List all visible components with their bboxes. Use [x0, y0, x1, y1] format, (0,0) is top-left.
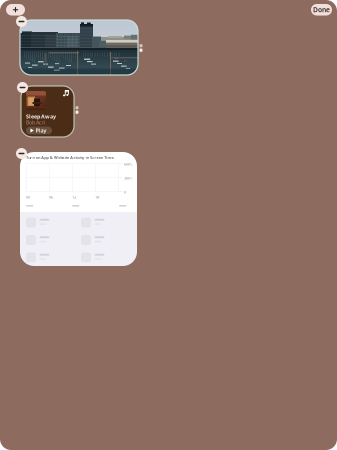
staticText: Sleep Away: [26, 113, 56, 120]
button[interactable]: Remove widget: [16, 148, 27, 159]
staticText: 00: [26, 194, 30, 200]
staticText: Play: [36, 127, 47, 134]
button[interactable]: Resize widget: [138, 43, 144, 53]
button[interactable]: Done: [311, 4, 332, 15]
staticText: Done: [313, 5, 330, 14]
staticText: 18: [95, 194, 99, 200]
staticText: 60m: [124, 161, 132, 167]
staticText: 30m: [124, 175, 132, 181]
staticText: Turn on App & Website Activity in Screen…: [26, 155, 115, 160]
staticText: 12: [72, 194, 76, 200]
staticText: Bob Acri: [26, 119, 45, 126]
staticText: 06: [49, 194, 53, 200]
staticText: 0: [124, 189, 126, 195]
button[interactable]: Remove widget: [17, 82, 28, 93]
button[interactable]: Remove widget: [16, 16, 27, 27]
button[interactable]: Play: [26, 127, 52, 134]
button[interactable]: Resize widget: [74, 105, 80, 115]
button[interactable]: Add widget: [6, 4, 25, 15]
